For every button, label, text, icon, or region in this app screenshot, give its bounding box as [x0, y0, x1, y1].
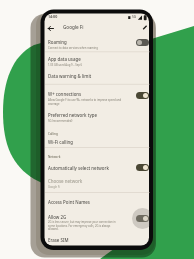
- staticText: Roaming: [48, 39, 67, 45]
- staticText: Allow 2G: [48, 214, 67, 220]
- staticText: Choose network: [48, 178, 83, 184]
- staticText: Connect to data services when roaming: [48, 46, 98, 50]
- button[interactable]: Allow 2G: [45, 209, 150, 232]
- button[interactable]: Access Point Names: [45, 195, 150, 207]
- staticText: Preferred network type: [48, 112, 97, 118]
- staticText: Erase SIM: [48, 237, 69, 243]
- staticText: 5G: [132, 15, 137, 19]
- button[interactable]: Wi-Fi calling: [45, 135, 150, 147]
- staticText: Automatically select network: [48, 165, 109, 171]
- staticText: 5G (recommended): [48, 119, 73, 123]
- button[interactable]: W+ connections: [45, 86, 150, 109]
- staticText: Calling: [48, 132, 58, 136]
- button[interactable]: [141, 24, 148, 31]
- staticText: 1.03 GB used Aug 9 – Sep 6: [48, 63, 83, 67]
- staticText: App data usage: [48, 56, 81, 62]
- staticText: some locations. For emergency calls, 2G …: [48, 224, 111, 228]
- staticText: Data warning & limit: [48, 73, 92, 79]
- button[interactable]: Preferred network type: [45, 109, 150, 124]
- staticText: 2G is less secure, but may improve your …: [48, 220, 116, 224]
- button[interactable]: Data warning & limit: [45, 70, 150, 84]
- button[interactable]: Automatically select network: [45, 161, 150, 175]
- staticText: allowed.: [48, 227, 59, 231]
- staticText: Network: [48, 155, 61, 159]
- button[interactable]: Choose network: [45, 175, 150, 190]
- staticText: Google Fi: [63, 24, 84, 30]
- staticText: Wi-Fi calling: [48, 139, 74, 145]
- staticText: W+ connections: [48, 91, 82, 97]
- staticText: coverage: [48, 102, 60, 106]
- staticText: Allow Google Fi to use W+ networks to im…: [48, 98, 122, 102]
- staticText: Access Point Names: [48, 199, 90, 205]
- button[interactable]: Roaming: [45, 36, 150, 52]
- button[interactable]: [46, 25, 53, 32]
- staticText: Google Fi: [48, 185, 60, 189]
- button[interactable]: Erase SIM: [45, 233, 150, 245]
- button[interactable]: App data usage: [45, 53, 150, 70]
- staticText: 14:00: [48, 14, 58, 19]
